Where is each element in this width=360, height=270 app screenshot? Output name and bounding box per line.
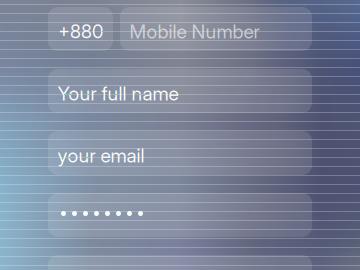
button[interactable]: Your full name	[48, 69, 312, 113]
button[interactable]: Password	[48, 193, 312, 237]
button[interactable]: your email	[48, 131, 312, 175]
staticText: Your full name	[57, 82, 178, 105]
staticText: Mobile Number	[129, 20, 259, 43]
button[interactable]: +880	[48, 7, 113, 51]
button[interactable]: Mobile Number	[120, 7, 312, 51]
button[interactable]: Confirm password	[48, 255, 312, 270]
staticText: +880	[58, 20, 103, 43]
staticText: your email	[57, 144, 144, 167]
